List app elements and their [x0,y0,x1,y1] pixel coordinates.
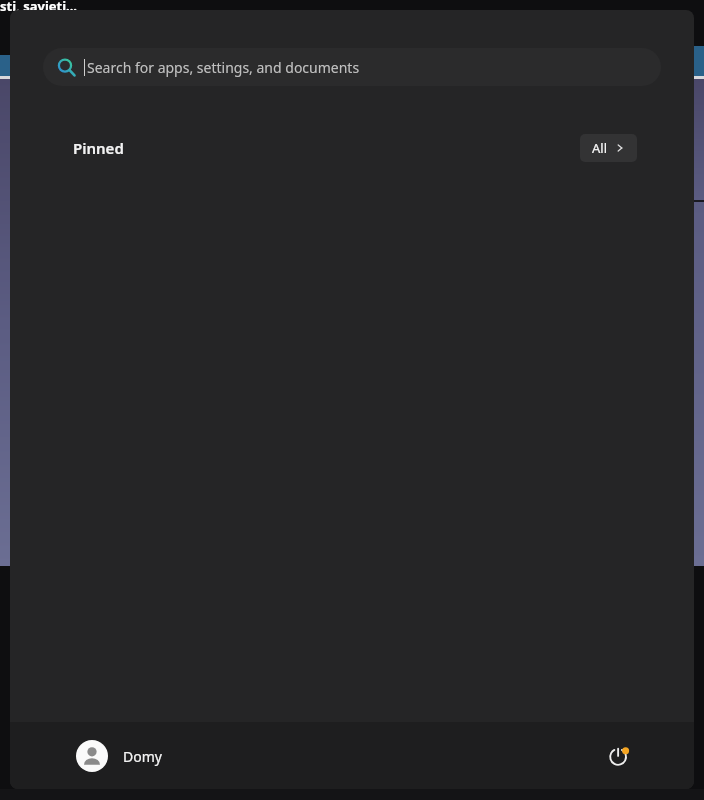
staticText: Pinned [73,138,124,158]
staticText: sti, savjeti... [0,0,77,15]
staticText: All [592,139,608,157]
staticText: Domy [123,747,162,766]
button[interactable]: Domy [70,732,168,780]
button[interactable]: Power [600,737,638,775]
staticText: Search for apps, settings, and documents [87,58,360,77]
button[interactable]: Search for apps, settings, and documents [43,48,661,86]
button[interactable]: All [580,134,637,162]
